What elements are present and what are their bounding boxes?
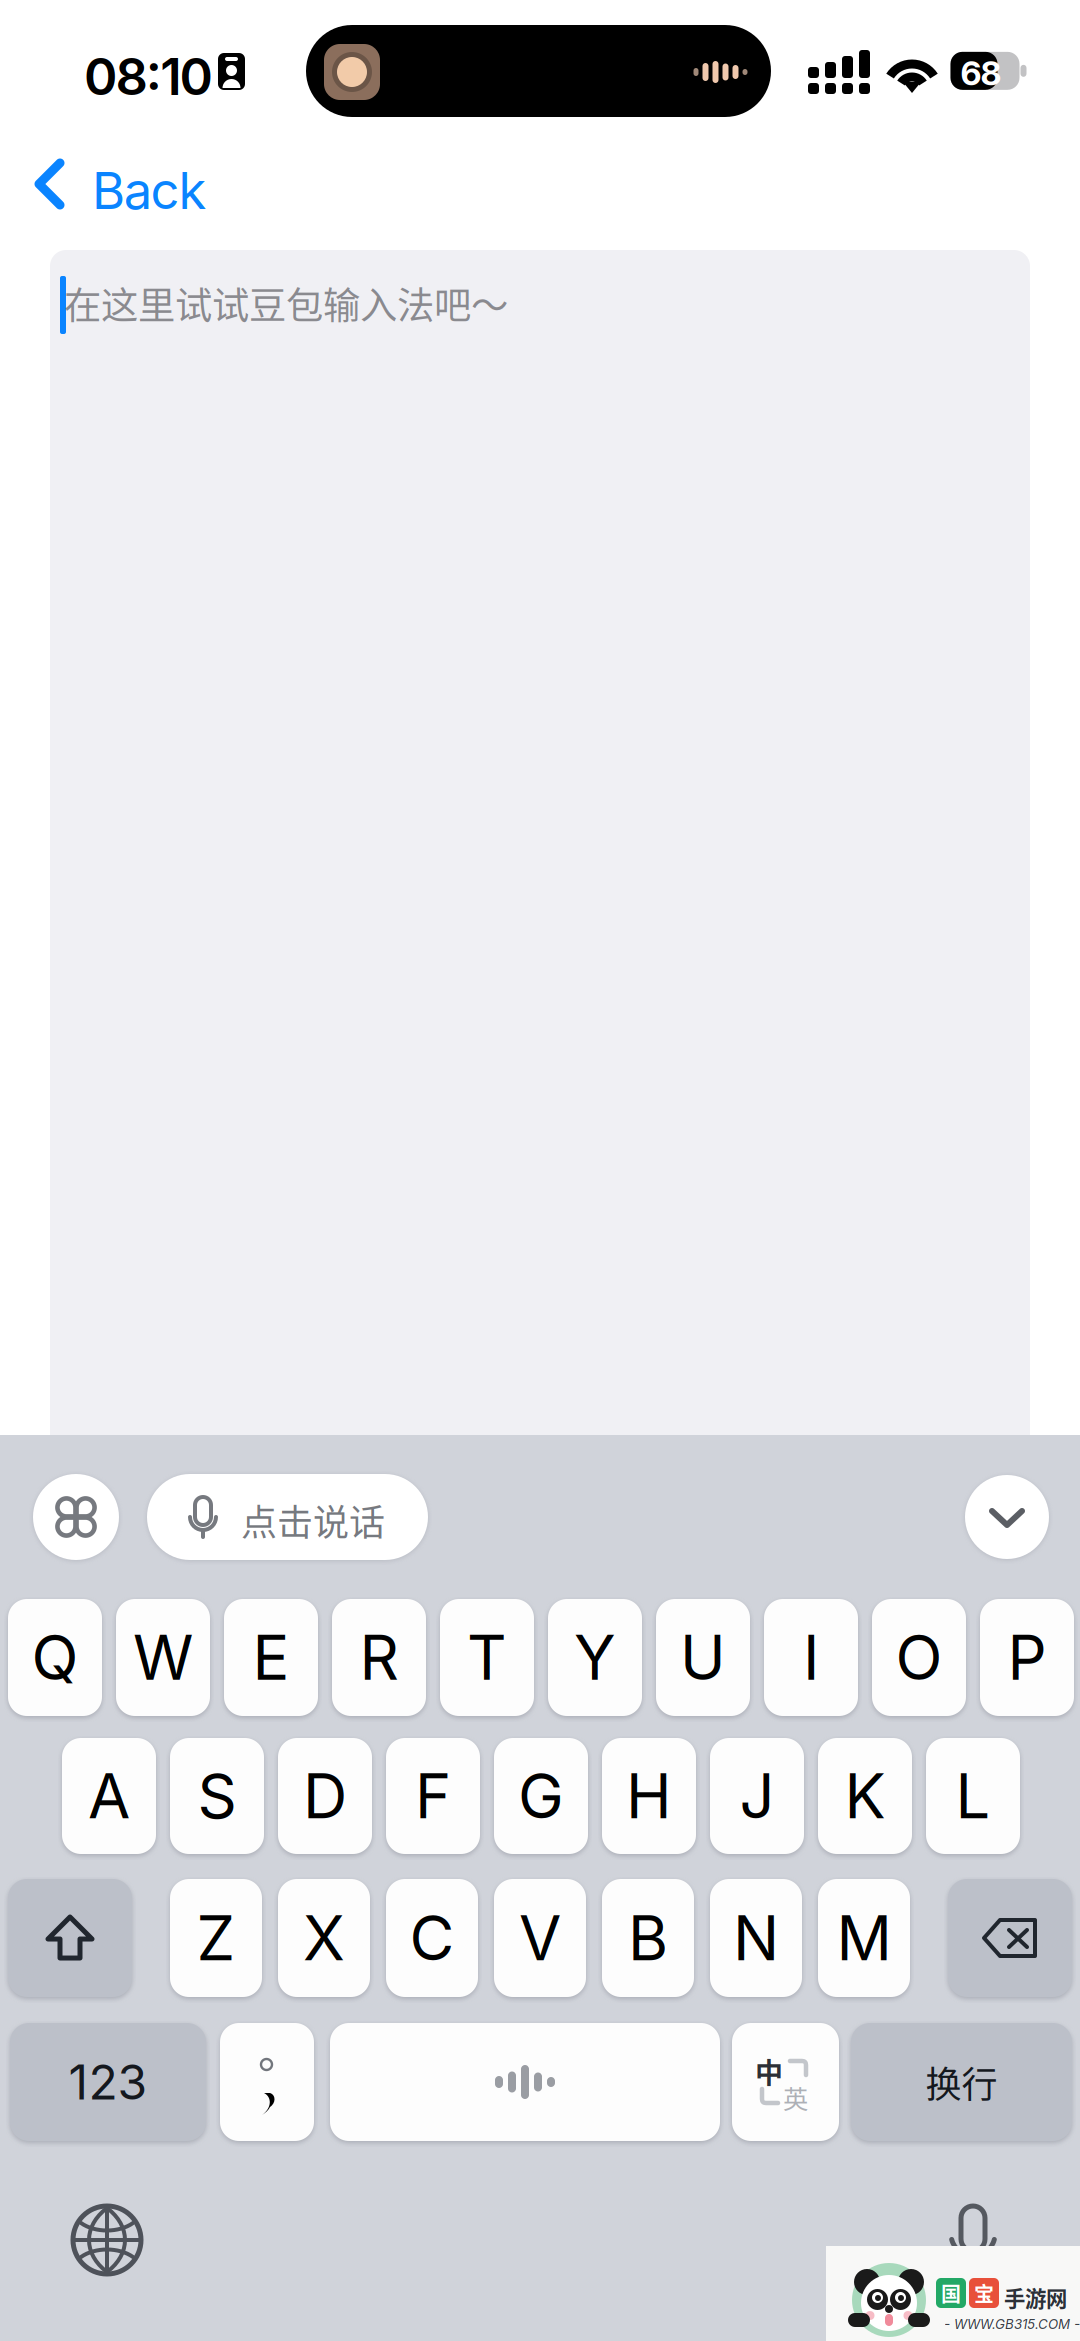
- staticText: S: [197, 1759, 236, 1833]
- staticText: F: [415, 1759, 451, 1833]
- button[interactable]: A: [62, 1738, 156, 1854]
- button[interactable]: Dictation: [945, 2206, 1001, 2274]
- button[interactable]: F: [386, 1738, 480, 1854]
- staticText: A: [88, 1759, 130, 1833]
- button[interactable]: G: [494, 1738, 588, 1854]
- staticText: Y: [574, 1620, 616, 1695]
- button[interactable]: K: [818, 1738, 912, 1854]
- staticText: 国: [941, 2278, 961, 2307]
- staticText: M: [836, 1901, 891, 1975]
- staticText: V: [519, 1901, 561, 1975]
- button[interactable]: B: [602, 1879, 694, 1997]
- button[interactable]: J: [710, 1738, 804, 1854]
- staticText: 在这里试试豆包输入法吧～: [64, 276, 508, 330]
- button[interactable]: W: [116, 1599, 210, 1716]
- staticText: I: [803, 1620, 819, 1695]
- staticText: 英: [783, 2079, 808, 2116]
- button[interactable]: S: [170, 1738, 264, 1854]
- button[interactable]: Shift: [8, 1879, 132, 1997]
- staticText: P: [1007, 1620, 1046, 1695]
- button[interactable]: Keyboard panel: [33, 1474, 119, 1560]
- button[interactable]: X: [278, 1879, 370, 1997]
- staticText: G: [518, 1759, 564, 1833]
- button[interactable]: H: [602, 1738, 696, 1854]
- staticText: 中: [755, 2051, 783, 2091]
- button[interactable]: Space: [330, 2023, 720, 2141]
- button[interactable]: Back: [0, 144, 300, 244]
- button[interactable]: P: [980, 1599, 1074, 1716]
- button[interactable]: R: [332, 1599, 426, 1716]
- staticText: 换行: [925, 2056, 997, 2108]
- button[interactable]: V: [494, 1879, 586, 1997]
- button[interactable]: U: [656, 1599, 750, 1716]
- button[interactable]: 123: [10, 2023, 206, 2141]
- button[interactable]: T: [440, 1599, 534, 1716]
- staticText: 08:10: [84, 46, 213, 107]
- staticText: B: [628, 1901, 668, 1975]
- button[interactable]: Change keyboard: [73, 2206, 141, 2274]
- button[interactable]: Y: [548, 1599, 642, 1716]
- staticText: W: [133, 1620, 193, 1695]
- staticText: K: [844, 1759, 885, 1833]
- button[interactable]: O: [872, 1599, 966, 1716]
- button[interactable]: E: [224, 1599, 318, 1716]
- staticText: U: [680, 1620, 726, 1695]
- button[interactable]: Switch language: [732, 2023, 839, 2141]
- button[interactable]: Z: [170, 1879, 262, 1997]
- button[interactable]: Delete: [948, 1879, 1072, 1997]
- button[interactable]: I: [764, 1599, 858, 1716]
- staticText: T: [467, 1620, 507, 1695]
- staticText: J: [739, 1759, 774, 1833]
- button[interactable]: 点击说话: [147, 1474, 428, 1560]
- button[interactable]: 换行: [851, 2023, 1072, 2141]
- staticText: C: [409, 1901, 454, 1975]
- staticText: Z: [196, 1901, 235, 1975]
- staticText: E: [252, 1620, 289, 1695]
- staticText: H: [626, 1759, 672, 1833]
- button[interactable]: M: [818, 1879, 910, 1997]
- button[interactable]: Hide keyboard: [965, 1475, 1049, 1559]
- staticText: 123: [68, 2053, 147, 2111]
- staticText: L: [955, 1759, 990, 1833]
- staticText: 点击说话: [241, 1494, 385, 1546]
- staticText: Q: [31, 1620, 78, 1695]
- staticText: X: [303, 1901, 345, 1975]
- staticText: Back: [92, 160, 206, 221]
- staticText: O: [895, 1620, 942, 1695]
- staticText: D: [303, 1759, 347, 1833]
- staticText: N: [733, 1901, 779, 1975]
- button[interactable]: D: [278, 1738, 372, 1854]
- staticText: R: [359, 1620, 398, 1695]
- button[interactable]: L: [926, 1738, 1020, 1854]
- staticText: 手游网: [1004, 2282, 1067, 2313]
- button[interactable]: C: [386, 1879, 478, 1997]
- staticText: 68: [960, 53, 1001, 93]
- button[interactable]: Q: [8, 1599, 102, 1716]
- button[interactable]: Comma: [220, 2023, 314, 2141]
- staticText: - WWW.GB315.COM -: [944, 2316, 1080, 2332]
- staticText: 宝: [974, 2278, 994, 2307]
- button[interactable]: N: [710, 1879, 802, 1997]
